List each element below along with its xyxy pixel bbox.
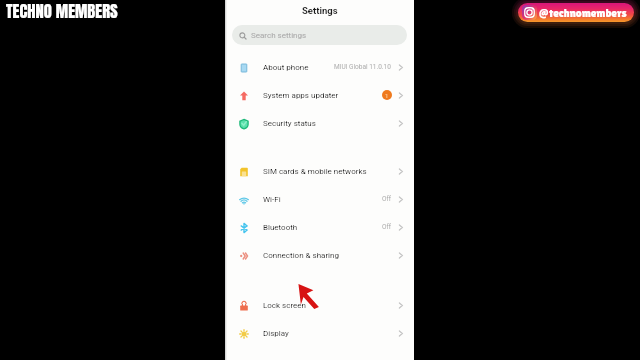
staticText: About phone	[263, 63, 309, 72]
staticText: TECHNO MEMBERS	[6, 0, 118, 23]
staticText: Connection & sharing	[263, 251, 339, 260]
staticText: Lock screen	[263, 301, 306, 310]
staticText: @technomembers	[539, 6, 627, 19]
button[interactable]: SIM cards & mobile networks	[225, 157, 414, 185]
button[interactable]: System apps updater	[225, 81, 414, 109]
staticText: Bluetooth	[263, 223, 298, 232]
staticText: SIM cards & mobile networks	[263, 167, 367, 176]
button[interactable]: Bluetooth	[225, 213, 414, 241]
staticText: Search settings	[251, 31, 307, 40]
staticText: Wi-Fi	[263, 195, 281, 204]
button[interactable]: Instagram @technomembers	[518, 3, 634, 22]
button[interactable]: Search settings	[232, 25, 407, 45]
button[interactable]: Connection & sharing	[225, 241, 414, 269]
staticText: Off	[382, 223, 391, 231]
staticText: Display	[263, 329, 289, 338]
button[interactable]: Display	[225, 319, 414, 347]
button[interactable]: Lock screen	[225, 291, 414, 319]
staticText: System apps updater	[263, 91, 339, 100]
staticText: Off	[382, 195, 391, 203]
button[interactable]: Security status	[225, 109, 414, 137]
staticText: Settings	[302, 5, 338, 16]
button[interactable]: Wi-Fi	[225, 185, 414, 213]
staticText: Security status	[263, 119, 316, 128]
staticText: MIUI Global 11.0.10	[334, 63, 391, 71]
button[interactable]: About phone	[225, 53, 414, 81]
staticText: 1	[385, 92, 389, 99]
